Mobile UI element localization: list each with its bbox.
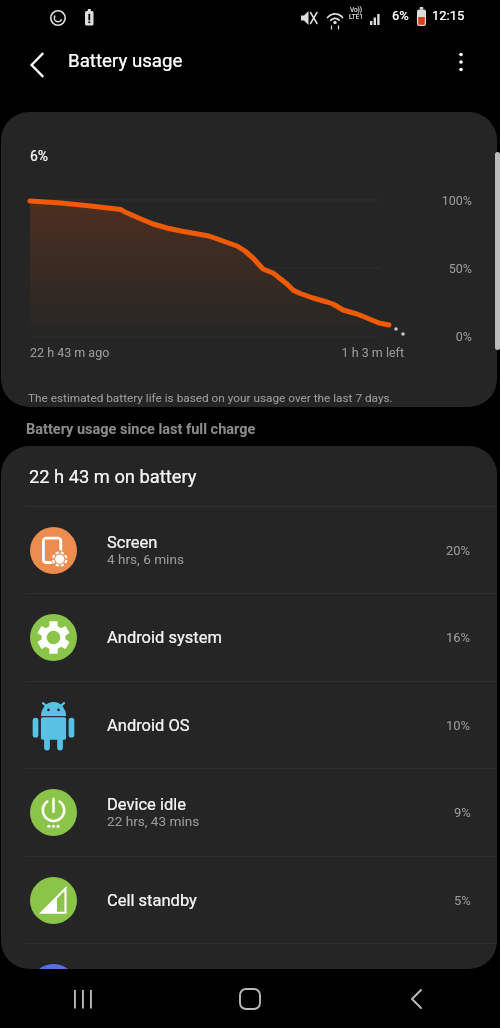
staticText: 16% — [446, 630, 471, 645]
staticText: 9% — [454, 805, 471, 820]
button[interactable]: Back — [333, 969, 500, 1028]
staticText: 100% — [392, 193, 472, 208]
button[interactable]: Google Play services — [1, 944, 497, 969]
button[interactable]: Android OS — [1, 682, 497, 768]
staticText: Device idle — [107, 795, 187, 814]
staticText: Cell standby — [107, 891, 197, 910]
staticText: Android OS — [107, 716, 190, 735]
staticText: 22 h 43 m ago — [30, 345, 110, 360]
staticText: 10% — [446, 718, 471, 733]
staticText: 6% — [392, 8, 409, 23]
staticText: 4 hrs, 6 mins — [107, 551, 184, 567]
button[interactable]: More options — [439, 40, 483, 84]
staticText: 22 hrs, 43 mins — [107, 813, 200, 829]
staticText: 0% — [392, 329, 472, 344]
button[interactable]: Android system — [1, 594, 497, 680]
button[interactable]: Device idle — [1, 769, 497, 855]
button[interactable]: Home — [166, 969, 333, 1028]
staticText: Battery usage — [68, 50, 183, 72]
button[interactable]: Screen — [1, 507, 497, 593]
staticText: 5% — [454, 893, 471, 908]
staticText: 22 h 43 m on battery — [29, 466, 197, 487]
staticText: The estimated battery life is based on y… — [28, 391, 393, 405]
staticText: 1 h 3 m left — [324, 345, 404, 360]
button[interactable]: Back — [14, 39, 62, 87]
staticText: 20% — [446, 543, 471, 558]
staticText: 6% — [30, 148, 49, 164]
button[interactable]: Recent apps — [0, 969, 166, 1028]
staticText: 12:15 — [432, 8, 465, 23]
staticText: Android system — [107, 628, 222, 647]
staticText: Vo)) LTE1 — [349, 6, 363, 20]
button[interactable]: Cell standby — [1, 857, 497, 943]
staticText: 50% — [392, 261, 472, 276]
staticText: Screen — [107, 533, 158, 552]
staticText: Battery usage since last full charge — [26, 421, 256, 438]
